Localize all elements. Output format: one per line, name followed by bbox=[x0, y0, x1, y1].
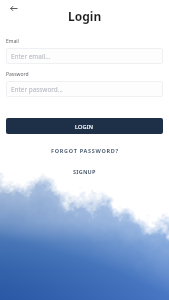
button[interactable]: SIGNUP bbox=[6, 166, 163, 177]
staticText: Password bbox=[6, 71, 29, 78]
button[interactable]: LOGIN bbox=[6, 118, 163, 134]
staticText: LOGIN bbox=[75, 123, 94, 130]
button[interactable]: Back bbox=[10, 3, 21, 14]
button[interactable]: FORGOT PASSWORD? bbox=[6, 145, 163, 156]
button[interactable]: Enter password... bbox=[6, 81, 163, 97]
staticText: SIGNUP bbox=[73, 168, 96, 175]
button[interactable]: Enter email... bbox=[6, 48, 163, 64]
staticText: Login bbox=[68, 8, 102, 24]
staticText: Enter email... bbox=[11, 52, 51, 61]
staticText: Enter password... bbox=[11, 85, 63, 94]
staticText: Email bbox=[6, 38, 19, 45]
staticText: FORGOT PASSWORD? bbox=[51, 147, 119, 154]
